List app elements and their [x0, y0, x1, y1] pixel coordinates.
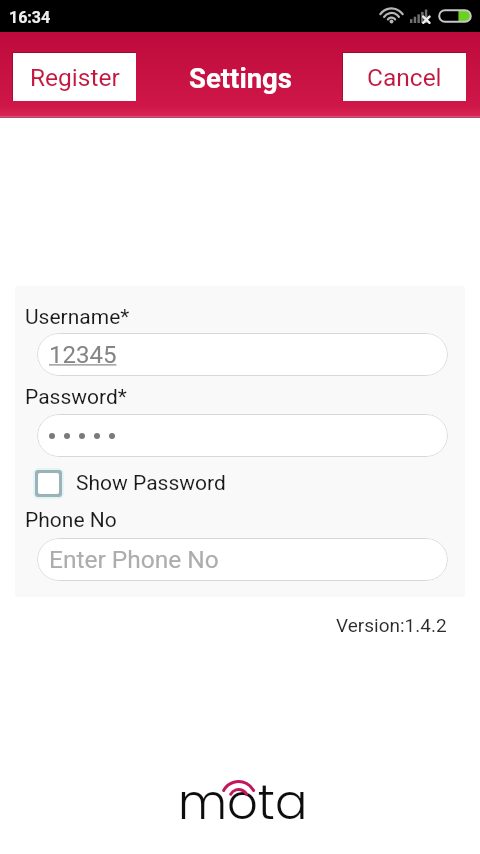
staticText: mota [178, 769, 308, 819]
staticText: Password* [25, 385, 127, 410]
staticText: Enter Phone No [49, 545, 219, 574]
staticText: Version:1.4.2 [336, 614, 447, 636]
staticText: Settings [189, 62, 292, 94]
button[interactable]: Enter Phone No [37, 538, 448, 581]
button[interactable]: Register [13, 53, 136, 101]
staticText: 16:34 [9, 8, 51, 27]
staticText: Username* [25, 305, 130, 330]
staticText: Register [30, 63, 120, 92]
button[interactable] [37, 414, 448, 457]
staticText: Phone No [25, 508, 117, 533]
staticText: Show Password [76, 471, 226, 496]
staticText: 12345 [49, 341, 117, 369]
button[interactable]: Cancel [343, 53, 466, 101]
button[interactable]: 12345 [37, 333, 448, 376]
staticText: Cancel [367, 63, 442, 92]
button[interactable]: Show Password [33, 468, 226, 499]
